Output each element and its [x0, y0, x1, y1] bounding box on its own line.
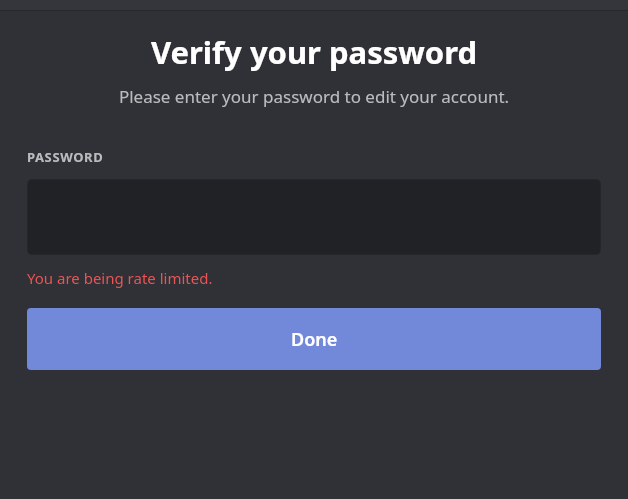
- staticText: PASSWORD: [27, 148, 104, 166]
- staticText: Verify your password: [0, 31, 628, 73]
- staticText: Done: [291, 327, 338, 352]
- staticText: You are being rate limited.: [27, 268, 213, 288]
- staticText: Please enter your password to edit your …: [0, 85, 628, 108]
- button[interactable]: Done: [27, 308, 601, 370]
